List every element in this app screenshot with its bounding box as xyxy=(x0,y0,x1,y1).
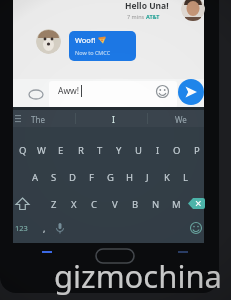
staticText: G xyxy=(107,171,114,184)
staticText: , xyxy=(43,222,46,234)
staticText: Aww! xyxy=(58,85,80,97)
staticText: gizmochina xyxy=(54,255,222,297)
button[interactable]: P xyxy=(187,141,206,159)
staticText: K xyxy=(164,171,170,184)
staticText: F xyxy=(89,171,94,184)
staticText: H xyxy=(126,171,134,184)
staticText: AT&T xyxy=(146,13,160,20)
staticText: W xyxy=(37,144,46,157)
button[interactable]: , xyxy=(38,220,50,236)
button[interactable]: T xyxy=(90,141,109,159)
button[interactable]: X xyxy=(64,195,83,213)
button[interactable]: C xyxy=(85,195,104,213)
staticText: V xyxy=(112,198,118,211)
button[interactable]: L xyxy=(176,168,195,186)
staticText: E xyxy=(58,144,64,157)
button[interactable]: B xyxy=(126,195,145,213)
staticText: B xyxy=(132,198,139,211)
button[interactable]: V xyxy=(105,195,124,213)
button[interactable]: Y xyxy=(109,141,128,159)
button[interactable]: I xyxy=(148,141,167,159)
button[interactable] xyxy=(13,194,32,213)
staticText: We xyxy=(175,114,187,125)
button[interactable]: Woof! xyxy=(69,31,136,61)
staticText: Hello Una! xyxy=(125,0,169,12)
button[interactable]: H xyxy=(120,168,139,186)
button[interactable] xyxy=(186,195,206,212)
staticText: I xyxy=(156,144,160,157)
staticText: Q xyxy=(19,144,27,157)
button[interactable]: Z xyxy=(44,195,63,213)
button[interactable]: J xyxy=(138,168,157,186)
staticText: N xyxy=(152,198,160,211)
staticText: T xyxy=(97,144,103,157)
button[interactable] xyxy=(53,220,67,236)
staticText: 7 mins xyxy=(127,13,146,20)
button[interactable]: D xyxy=(63,168,82,186)
staticText: O xyxy=(173,144,181,157)
button[interactable]: F xyxy=(82,168,101,186)
staticText: C xyxy=(91,198,98,211)
button[interactable]: O xyxy=(167,141,186,159)
staticText: P xyxy=(194,144,200,157)
staticText: J xyxy=(146,171,149,184)
staticText: L xyxy=(183,171,188,184)
staticText: 123 xyxy=(15,223,28,233)
button[interactable]: I xyxy=(93,111,133,127)
button[interactable]: M xyxy=(167,195,186,213)
button[interactable] xyxy=(28,86,44,102)
button[interactable]: 123 xyxy=(10,220,32,236)
staticText: Y xyxy=(116,144,122,157)
staticText: The xyxy=(31,114,45,125)
staticText: X xyxy=(71,198,77,211)
staticText: Z xyxy=(51,198,57,211)
staticText: S xyxy=(51,171,57,184)
staticText: R xyxy=(78,144,84,157)
button[interactable]: E xyxy=(51,141,70,159)
staticText: Now to CMCC xyxy=(75,49,111,56)
button[interactable]: R xyxy=(71,141,90,159)
button[interactable]: A xyxy=(26,168,45,186)
staticText: A xyxy=(32,171,39,184)
button[interactable]: K xyxy=(157,168,176,186)
staticText: I xyxy=(112,114,115,125)
button[interactable]: The xyxy=(18,111,58,127)
button[interactable]: We xyxy=(161,111,201,127)
button[interactable] xyxy=(187,220,204,236)
staticText: M xyxy=(172,198,181,211)
staticText: D xyxy=(69,171,76,184)
button[interactable]: S xyxy=(44,168,63,186)
button[interactable]: G xyxy=(101,168,120,186)
staticText: Woof! xyxy=(75,35,98,45)
button[interactable]: U xyxy=(129,141,148,159)
button[interactable]: W xyxy=(32,141,51,159)
button[interactable]: Q xyxy=(13,141,32,159)
staticText: U xyxy=(135,144,142,157)
button[interactable] xyxy=(154,83,170,99)
button[interactable] xyxy=(178,79,204,105)
button[interactable]: N xyxy=(146,195,165,213)
